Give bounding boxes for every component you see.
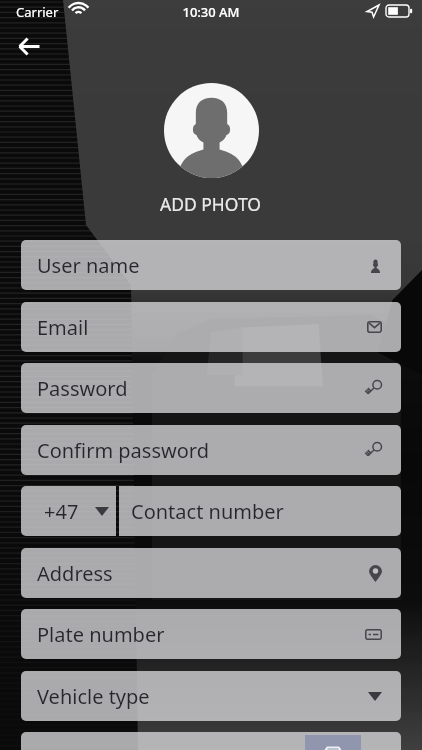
button[interactable]: Password <box>21 363 401 413</box>
button[interactable]: Address <box>21 548 401 598</box>
staticText: ADD PHOTO <box>160 192 262 216</box>
button[interactable]: Upload vehicle image <box>21 732 401 750</box>
button[interactable]: Back <box>12 29 46 63</box>
button[interactable]: Add photo <box>164 83 259 178</box>
button[interactable]: Confirm password <box>21 425 401 475</box>
staticText: 10:30 AM <box>0 3 422 21</box>
button[interactable]: Country code +47 <box>21 486 116 536</box>
staticText: User name <box>37 252 140 279</box>
staticText: Vehicle type <box>37 683 150 710</box>
button[interactable]: Vehicle type <box>21 671 401 721</box>
staticText: Password <box>37 375 128 402</box>
staticText: Plate number <box>37 621 165 648</box>
staticText: Upload vehicle image <box>37 744 239 750</box>
staticText: Carrier <box>16 3 59 21</box>
button[interactable]: Email <box>21 302 401 352</box>
button[interactable]: Contact number <box>119 486 401 536</box>
staticText: Address <box>37 560 113 587</box>
button[interactable]: Pick vehicle image <box>305 735 361 750</box>
staticText: Confirm password <box>37 437 209 464</box>
staticText: Contact number <box>131 498 284 525</box>
staticText: +47 <box>44 498 79 525</box>
staticText: Email <box>37 314 89 341</box>
button[interactable]: User name <box>21 240 401 290</box>
button[interactable]: Plate number <box>21 609 401 659</box>
